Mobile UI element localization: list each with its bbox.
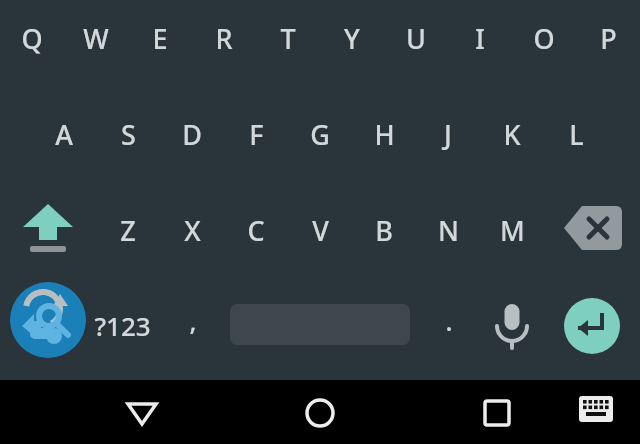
- button[interactable]: J: [393, 102, 503, 166]
- staticText: G: [310, 116, 330, 153]
- button[interactable]: O: [489, 6, 599, 70]
- button[interactable]: Z: [73, 198, 183, 262]
- staticText: C: [247, 212, 265, 249]
- staticText: Y: [344, 20, 360, 57]
- button[interactable]: Q: [0, 6, 87, 70]
- button[interactable]: .: [394, 288, 504, 352]
- button[interactable]: U: [361, 6, 471, 70]
- button[interactable]: K: [457, 102, 567, 166]
- button[interactable]: N: [393, 198, 503, 262]
- staticText: P: [600, 20, 617, 57]
- button[interactable]: S: [73, 102, 183, 166]
- staticText: .: [445, 303, 453, 338]
- staticText: L: [569, 116, 584, 153]
- staticText: I: [475, 20, 485, 57]
- button[interactable]: V: [265, 198, 375, 262]
- button[interactable]: Shift: [6, 196, 90, 264]
- button[interactable]: ?123: [67, 293, 177, 357]
- staticText: M: [500, 212, 525, 249]
- button[interactable]: Home: [290, 382, 350, 442]
- staticText: U: [406, 20, 426, 57]
- button[interactable]: P: [553, 6, 640, 70]
- button[interactable]: E: [105, 6, 215, 70]
- staticText: E: [152, 20, 168, 57]
- staticText: H: [374, 116, 395, 153]
- button[interactable]: Voice input: [484, 294, 540, 350]
- staticText: D: [182, 116, 202, 153]
- staticText: S: [121, 116, 136, 153]
- button[interactable]: X: [137, 198, 247, 262]
- button[interactable]: Backspace: [556, 198, 634, 260]
- button[interactable]: D: [137, 102, 247, 166]
- button[interactable]: M: [457, 198, 567, 262]
- staticText: R: [215, 20, 233, 57]
- staticText: W: [83, 20, 109, 57]
- button[interactable]: F: [201, 102, 311, 166]
- button[interactable]: H: [329, 102, 439, 166]
- button[interactable]: L: [521, 102, 631, 166]
- button[interactable]: W: [41, 6, 151, 70]
- button[interactable]: A: [9, 102, 119, 166]
- staticText: J: [444, 116, 452, 153]
- staticText: Z: [120, 212, 136, 249]
- button[interactable]: G: [265, 102, 375, 166]
- button[interactable]: ,: [138, 288, 248, 352]
- button[interactable]: Hide keyboard: [112, 382, 172, 442]
- button[interactable]: Y: [297, 6, 407, 70]
- staticText: X: [184, 212, 201, 249]
- button[interactable]: Enter: [564, 298, 620, 354]
- staticText: K: [503, 116, 521, 153]
- staticText: F: [249, 116, 264, 153]
- button[interactable]: Search again: [10, 282, 86, 358]
- staticText: ,: [189, 303, 197, 338]
- staticText: Q: [21, 20, 43, 57]
- button[interactable]: I: [425, 6, 535, 70]
- button[interactable]: Change keyboard: [570, 388, 622, 436]
- button[interactable]: B: [329, 198, 439, 262]
- button[interactable]: Recent apps: [467, 382, 527, 442]
- button[interactable]: T: [233, 6, 343, 70]
- button[interactable]: C: [201, 198, 311, 262]
- staticText: A: [55, 116, 73, 153]
- staticText: N: [438, 212, 459, 249]
- staticText: V: [312, 212, 329, 249]
- staticText: T: [280, 20, 296, 57]
- staticText: B: [375, 212, 393, 249]
- staticText: ?123: [94, 308, 151, 343]
- staticText: O: [533, 20, 555, 57]
- button[interactable]: R: [169, 6, 279, 70]
